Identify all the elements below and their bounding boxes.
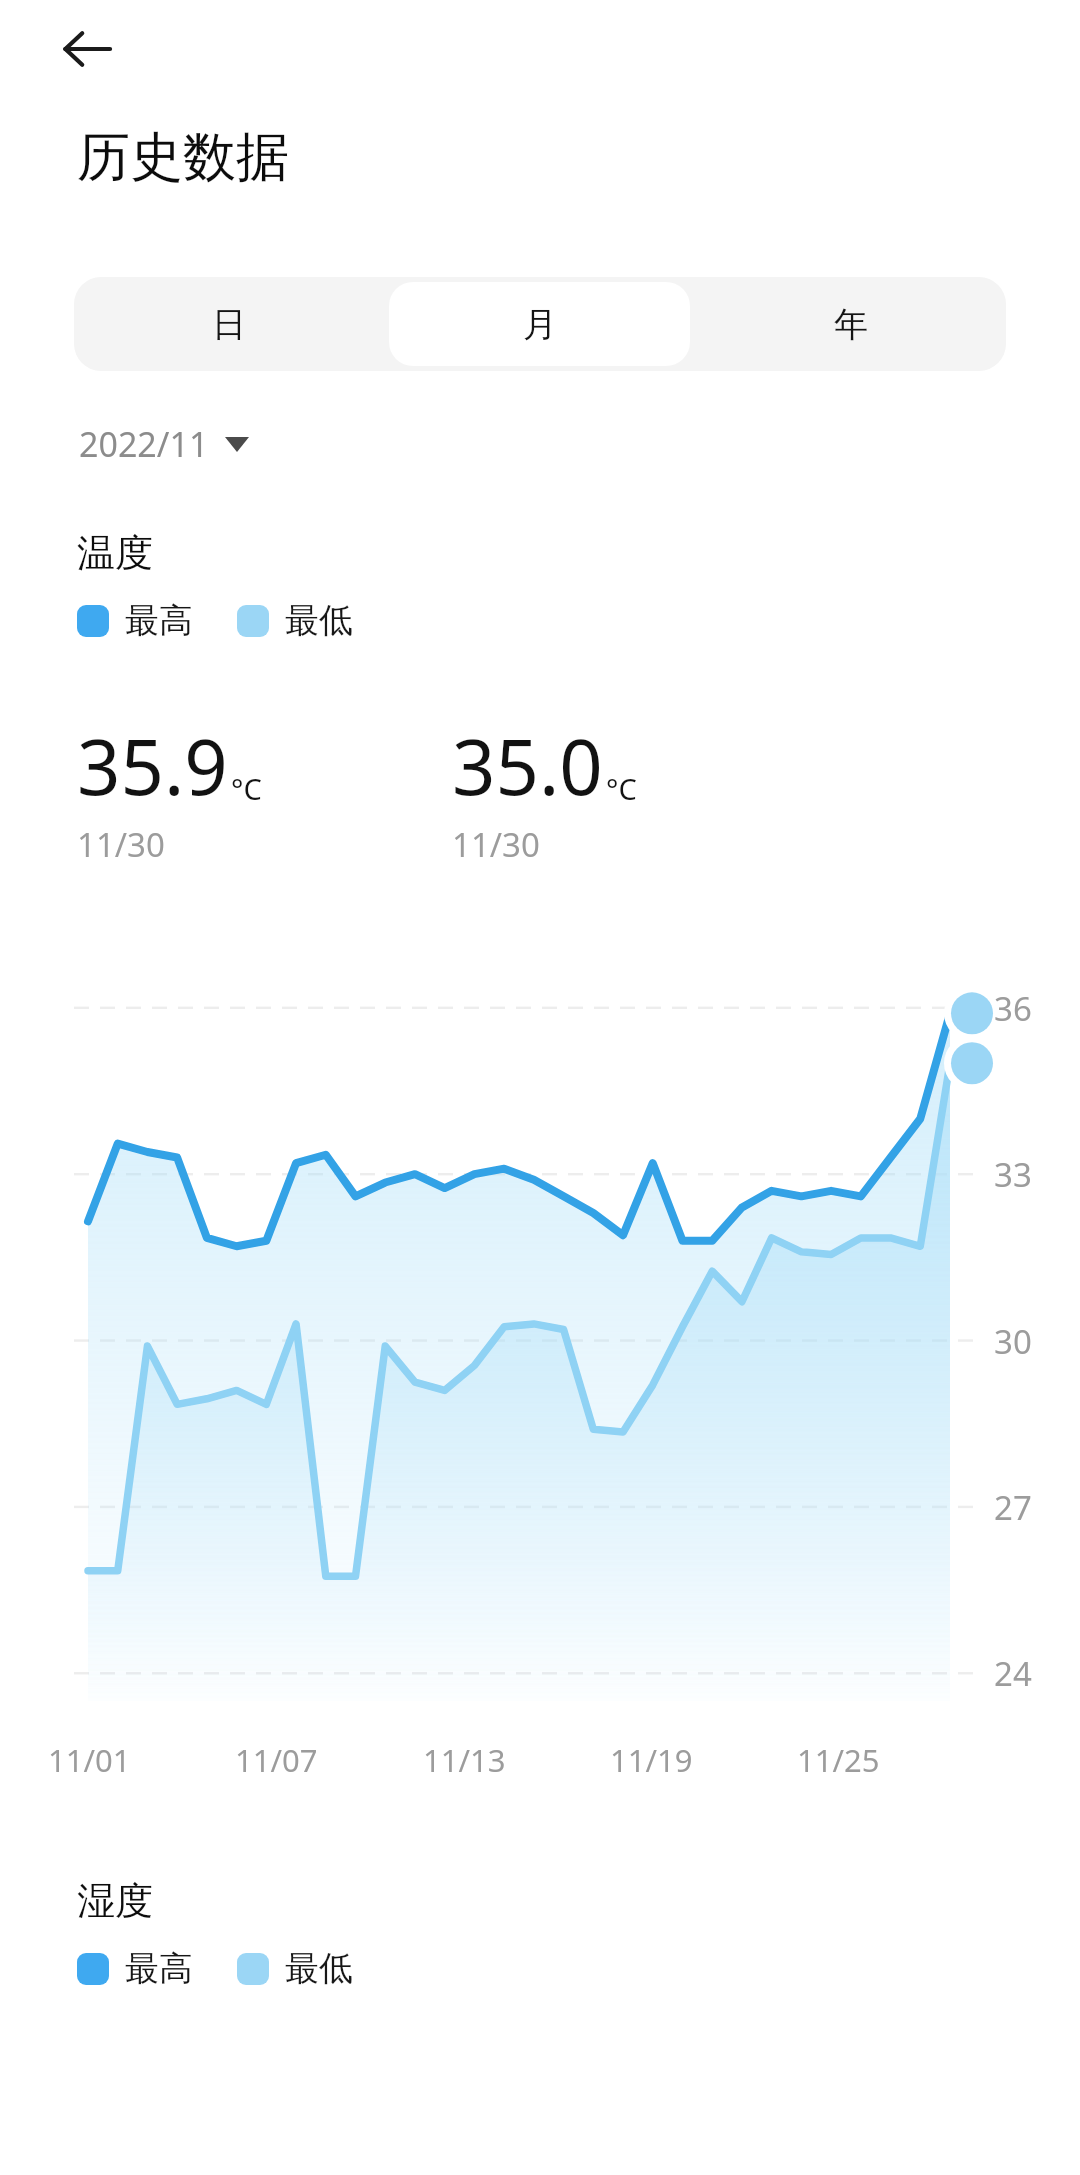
staticText: 33 [994, 1152, 1032, 1197]
staticText: 2022/11 [79, 421, 209, 467]
staticText: 最低 [285, 599, 353, 642]
staticText: 11/07 [235, 1739, 318, 1781]
staticText: 历史数据 [77, 124, 289, 191]
staticText: 35.9 [77, 714, 228, 818]
staticText: 11/25 [797, 1739, 880, 1781]
staticText: 24 [994, 1651, 1032, 1696]
staticText: 11/19 [610, 1739, 693, 1781]
staticText: 湿度 [77, 1877, 153, 1925]
staticText: 11/30 [77, 822, 165, 867]
staticText: 最高 [125, 1947, 193, 1990]
staticText: 11/30 [452, 822, 540, 867]
button[interactable]: 2022/11 [75, 415, 253, 473]
staticText: °C [231, 769, 262, 808]
staticText: 11/13 [423, 1739, 506, 1781]
staticText: 35.0 [452, 714, 603, 818]
staticText: 最低 [285, 1947, 353, 1990]
button[interactable]: 年 [700, 282, 1001, 366]
button[interactable]: 日 [79, 282, 379, 366]
staticText: 36 [994, 986, 1032, 1031]
staticText: 月 [523, 303, 557, 346]
staticText: 日 [212, 303, 246, 346]
staticText: 年 [834, 303, 868, 346]
staticText: 27 [994, 1485, 1032, 1530]
staticText: 30 [994, 1319, 1032, 1364]
staticText: 温度 [77, 529, 153, 577]
staticText: 最高 [125, 599, 193, 642]
staticText: 11/01 [48, 1739, 131, 1781]
staticText: °C [606, 769, 637, 808]
button[interactable]: Back [54, 16, 120, 82]
button[interactable]: 月 [389, 282, 690, 366]
